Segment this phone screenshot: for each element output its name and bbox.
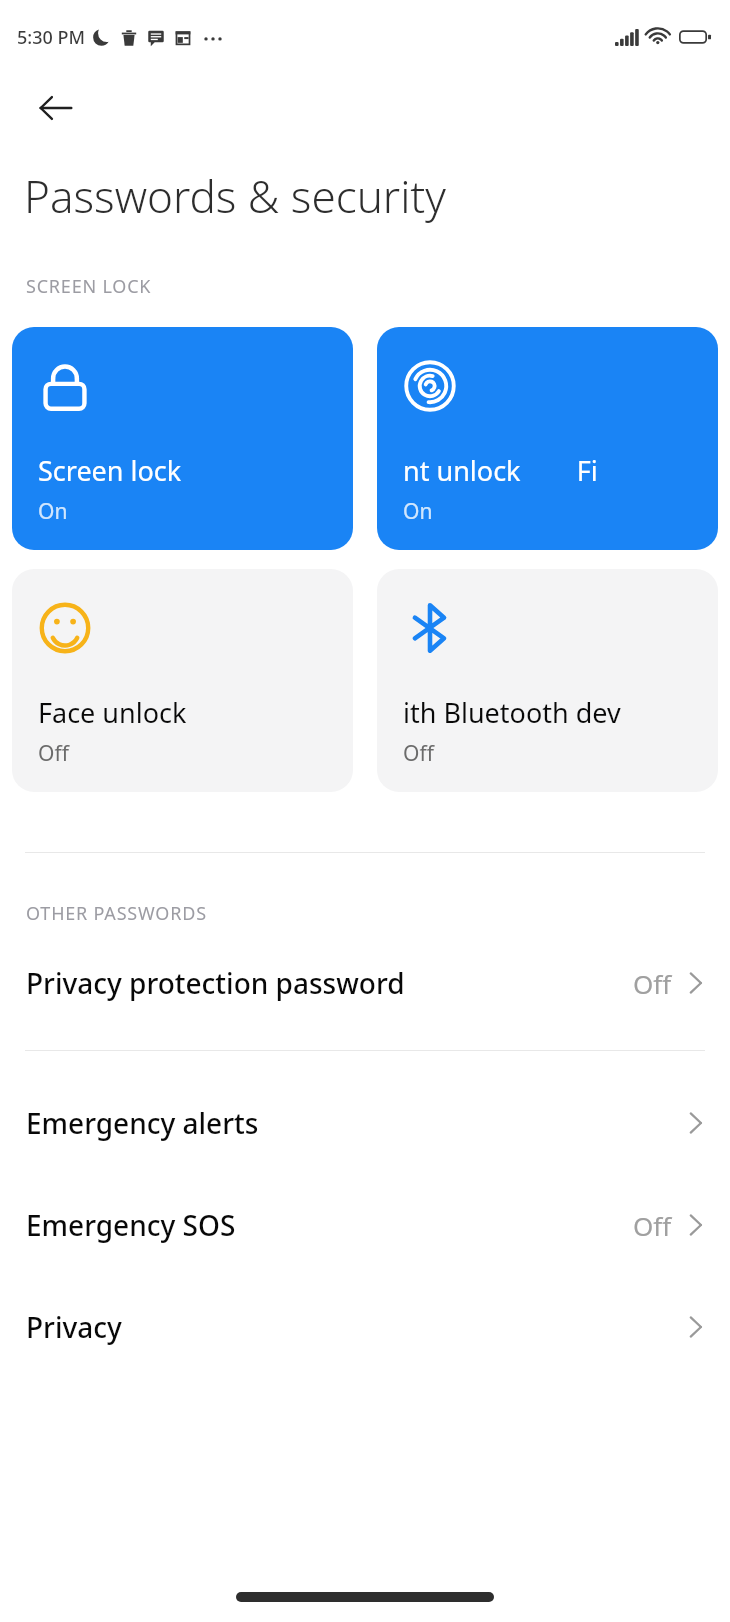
staticText: Emergency SOS bbox=[26, 1206, 236, 1244]
staticText: Privacy bbox=[26, 1308, 122, 1346]
staticText: Face unlock bbox=[38, 694, 187, 731]
button[interactable]: ith Bluetooth dev bbox=[377, 569, 718, 792]
staticText: Passwords & security bbox=[24, 166, 446, 226]
staticText: OTHER PASSWORDS bbox=[26, 901, 207, 926]
staticText: On bbox=[403, 497, 433, 526]
staticText: Emergency alerts bbox=[26, 1104, 259, 1142]
staticText: Off bbox=[38, 739, 69, 768]
button[interactable]: Face unlock bbox=[12, 569, 353, 792]
button[interactable]: Privacy protection password bbox=[0, 956, 730, 1010]
button[interactable]: Privacy bbox=[0, 1300, 730, 1354]
staticText: SCREEN LOCK bbox=[26, 274, 152, 299]
button[interactable]: Emergency SOS bbox=[0, 1198, 730, 1252]
button[interactable]: Back bbox=[28, 80, 84, 136]
staticText: Privacy protection password bbox=[26, 964, 405, 1002]
button[interactable]: nt unlock Fi bbox=[377, 327, 718, 550]
button[interactable]: Emergency alerts bbox=[0, 1096, 730, 1150]
staticText: nt unlock Fi bbox=[403, 452, 598, 489]
staticText: Off bbox=[403, 739, 434, 768]
staticText: Off bbox=[633, 966, 672, 1001]
staticText: ith Bluetooth dev bbox=[403, 694, 621, 731]
button[interactable]: Screen lock bbox=[12, 327, 353, 550]
staticText: Screen lock bbox=[38, 452, 182, 489]
staticText: Off bbox=[633, 1208, 672, 1243]
staticText: On bbox=[38, 497, 68, 526]
staticText: 5:30 PM bbox=[17, 25, 85, 50]
